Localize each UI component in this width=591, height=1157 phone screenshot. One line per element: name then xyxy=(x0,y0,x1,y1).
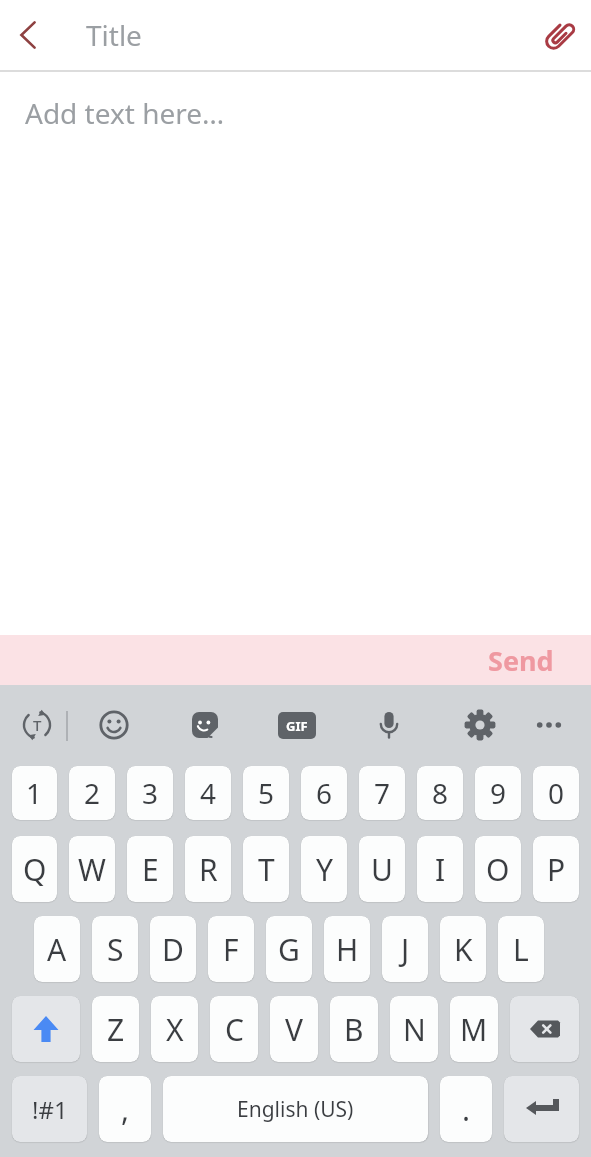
staticText: English (US) xyxy=(237,1095,354,1124)
button[interactable]: 9 xyxy=(475,766,521,820)
staticText: B xyxy=(344,1009,364,1050)
button[interactable] xyxy=(459,704,501,746)
staticText: I xyxy=(435,849,446,890)
staticText: E xyxy=(142,849,159,890)
button[interactable] xyxy=(510,996,579,1062)
staticText: Title xyxy=(86,16,529,54)
button[interactable]: 6 xyxy=(301,766,347,820)
button[interactable]: 7 xyxy=(359,766,405,820)
staticText: V xyxy=(285,1009,303,1050)
button[interactable] xyxy=(368,704,410,746)
button[interactable]: W xyxy=(69,836,115,902)
staticText: T xyxy=(33,715,42,735)
staticText: A xyxy=(47,929,67,970)
button[interactable] xyxy=(184,704,226,746)
button[interactable]: GIF xyxy=(276,704,318,746)
button[interactable]: I xyxy=(417,836,463,902)
staticText: Z xyxy=(107,1009,125,1050)
button[interactable]: Y xyxy=(301,836,347,902)
staticText: 7 xyxy=(374,774,391,812)
button[interactable]: 1 xyxy=(12,766,57,820)
button[interactable]: 5 xyxy=(243,766,289,820)
button[interactable]: J xyxy=(382,916,428,982)
button[interactable]: S xyxy=(92,916,138,982)
staticText: N xyxy=(403,1009,426,1050)
staticText: D xyxy=(162,929,184,970)
staticText: 9 xyxy=(490,774,507,812)
staticText: H xyxy=(336,929,359,970)
button[interactable]: 8 xyxy=(417,766,463,820)
staticText: R xyxy=(199,849,218,890)
button[interactable]: Add text here… xyxy=(0,72,591,635)
button[interactable]: C xyxy=(210,996,258,1062)
staticText: 6 xyxy=(316,774,333,812)
staticText: K xyxy=(454,929,473,970)
button[interactable]: Q xyxy=(12,836,57,902)
staticText: P xyxy=(547,849,566,890)
button[interactable]: T xyxy=(243,836,289,902)
staticText: L xyxy=(513,929,529,970)
button[interactable]: Send xyxy=(488,642,591,679)
button[interactable]: 2 xyxy=(69,766,115,820)
staticText: . xyxy=(462,1089,471,1130)
staticText: 2 xyxy=(84,774,101,812)
staticText: J xyxy=(401,929,410,970)
staticText: 8 xyxy=(432,774,449,812)
staticText: !#1 xyxy=(32,1093,68,1126)
button[interactable] xyxy=(0,7,56,63)
staticText: M xyxy=(460,1009,488,1050)
button[interactable]: A xyxy=(34,916,80,982)
staticText: S xyxy=(107,929,124,970)
button[interactable]: . xyxy=(440,1076,492,1142)
staticText: F xyxy=(223,929,239,970)
button[interactable]: 0 xyxy=(533,766,579,820)
staticText: , xyxy=(121,1089,130,1130)
button[interactable]: B xyxy=(330,996,378,1062)
staticText: T xyxy=(258,849,275,890)
button[interactable]: N xyxy=(390,996,438,1062)
button[interactable]: D xyxy=(150,916,196,982)
staticText: 5 xyxy=(258,774,275,812)
button[interactable]: H xyxy=(324,916,370,982)
staticText: GIF xyxy=(286,717,308,735)
button[interactable]: G xyxy=(266,916,312,982)
button[interactable]: F xyxy=(208,916,254,982)
button[interactable] xyxy=(93,704,135,746)
staticText: 1 xyxy=(26,774,43,812)
button[interactable] xyxy=(529,4,591,66)
staticText: Add text here… xyxy=(25,94,225,132)
staticText: U xyxy=(371,849,393,890)
button[interactable]: O xyxy=(475,836,521,902)
button[interactable]: U xyxy=(359,836,405,902)
staticText: W xyxy=(78,849,106,890)
staticText: Q xyxy=(23,849,47,890)
button[interactable] xyxy=(12,996,80,1062)
staticText: C xyxy=(225,1009,244,1050)
button[interactable]: X xyxy=(151,996,198,1062)
button[interactable]: V xyxy=(270,996,318,1062)
staticText: 3 xyxy=(142,774,159,812)
button[interactable]: E xyxy=(127,836,173,902)
staticText: 0 xyxy=(548,774,565,812)
button[interactable] xyxy=(528,704,570,746)
button[interactable]: , xyxy=(99,1076,151,1142)
staticText: G xyxy=(278,929,300,970)
button[interactable]: English (US) xyxy=(163,1076,428,1142)
staticText: 4 xyxy=(200,774,217,812)
staticText: Send xyxy=(488,642,554,679)
button[interactable]: M xyxy=(450,996,498,1062)
button[interactable]: T xyxy=(16,704,58,746)
staticText: X xyxy=(166,1009,184,1050)
button[interactable]: P xyxy=(533,836,579,902)
button[interactable]: !#1 xyxy=(12,1076,87,1142)
button[interactable]: Z xyxy=(92,996,139,1062)
button[interactable]: 3 xyxy=(127,766,173,820)
button[interactable]: L xyxy=(498,916,544,982)
button[interactable]: 4 xyxy=(185,766,231,820)
staticText: Y xyxy=(316,849,333,890)
staticText: O xyxy=(486,849,510,890)
button[interactable]: R xyxy=(185,836,231,902)
button[interactable] xyxy=(504,1076,579,1142)
button[interactable]: K xyxy=(440,916,486,982)
